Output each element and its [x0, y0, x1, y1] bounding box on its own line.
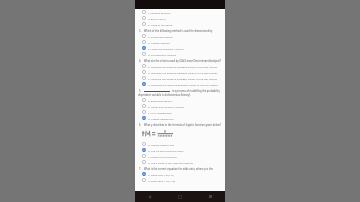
button[interactable]: c. Multiple decision: [137, 9, 223, 15]
staticText: c. KNN classification: [148, 111, 172, 114]
button[interactable]: b. The curve's maximum value: [137, 147, 223, 153]
staticText: b. Odds ratio = p/(1-1p): [148, 179, 176, 182]
staticText: What is the correct equation for odds ra…: [144, 167, 222, 170]
button[interactable]: b. Odds ratio = p/(1-1p): [137, 177, 223, 183]
staticText: c. Minimize the distance between means o…: [148, 77, 221, 80]
button[interactable]: Home: [165, 191, 195, 202]
button[interactable]: a. Regression/Board: [137, 97, 223, 103]
button[interactable]: b. Linear Discriminant Analysis: [137, 103, 223, 109]
staticText: b. Logistic method: [148, 41, 170, 44]
button[interactable]: d. Classification method: [137, 51, 223, 57]
staticText: b. The curve's maximum value: [148, 149, 184, 152]
staticText: a. Minimize the distance between means o…: [148, 65, 221, 68]
staticText: is a process of modelling the probabilit…: [172, 89, 222, 92]
staticText: c. Output of the function: [148, 155, 177, 158]
button[interactable]: c. KNN classification: [137, 109, 223, 115]
staticText: b. Minimize the distance between means o…: [148, 71, 221, 74]
staticText: d. The x-value of the sigmoid midpoint: [148, 161, 194, 164]
staticText: c. Multiple decision: [148, 11, 171, 14]
staticText: 3.: [139, 29, 142, 32]
staticText: What are the criteria used by LDA (Linea…: [144, 59, 221, 62]
button[interactable]: a. Minimize the distance between means o…: [137, 63, 223, 69]
button[interactable]: a. Logistic growth rate: [137, 141, 223, 147]
button[interactable]: Recent apps: [195, 191, 225, 202]
button[interactable]: b. Minimize the distance between means o…: [137, 69, 223, 75]
staticText: e. None of the above: [148, 23, 173, 26]
button[interactable]: c. Minimize the distance between means o…: [137, 75, 223, 81]
staticText: a. Regression/Board: [148, 99, 172, 102]
button[interactable]: d. Logistic Regression: [137, 115, 223, 121]
staticText: 6.: [139, 123, 142, 126]
staticText: dependent variable is dichotomous (binar…: [138, 93, 191, 96]
button[interactable]: a. Clustering method: [137, 33, 223, 39]
staticText: d. Classification method: [148, 53, 177, 56]
staticText: 4.: [139, 59, 142, 62]
staticText: a. Clustering method: [148, 35, 173, 38]
staticText: a. Odds ratio = p/(1-p): [148, 173, 174, 176]
button[interactable]: d. Maximize the distance between means o…: [137, 81, 223, 87]
staticText: b. Linear Discriminant Analysis: [148, 105, 184, 108]
button[interactable]: b. Logistic method: [137, 39, 223, 45]
button[interactable]: d. Both a and b: [137, 15, 223, 21]
staticText: d. Maximize the distance between means o…: [148, 83, 221, 86]
staticText: d. Both a and b: [148, 17, 166, 20]
button[interactable]: a. Odds ratio = p/(1-p): [137, 171, 223, 177]
staticText: 7.: [139, 167, 142, 170]
staticText: What y describes in the formula of logis…: [144, 123, 221, 126]
button[interactable]: c. Linear Discriminant Analysis: [137, 45, 223, 51]
staticText: a. Logistic growth rate: [148, 143, 175, 146]
button[interactable]: d. The x-value of the sigmoid midpoint: [137, 159, 223, 165]
staticText: d. Logistic Regression: [148, 117, 174, 120]
staticText: c. Linear Discriminant Analysis: [148, 47, 184, 50]
button[interactable]: e. None of the above: [137, 21, 223, 27]
button[interactable]: Back: [135, 191, 165, 202]
staticText: 5.: [139, 89, 142, 92]
staticText: Which of the following method is used fo…: [144, 29, 222, 32]
button[interactable]: c. Output of the function: [137, 153, 223, 159]
